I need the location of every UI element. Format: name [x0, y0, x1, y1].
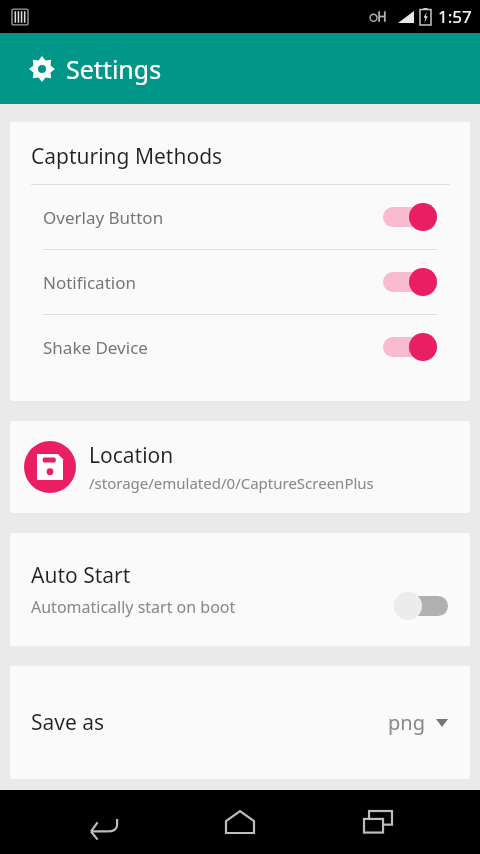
staticText: png — [388, 709, 425, 736]
button[interactable]: Overlay Button — [10, 185, 470, 249]
staticText: Auto Start — [31, 561, 131, 590]
button[interactable]: Off — [394, 592, 448, 620]
staticText: Notification — [43, 271, 383, 294]
staticText: Shake Device — [43, 336, 383, 359]
staticText: Capturing Methods — [31, 142, 223, 171]
button[interactable]: Save as — [10, 666, 470, 779]
staticText: 1:57 — [438, 5, 472, 28]
button[interactable]: On — [383, 268, 437, 296]
button[interactable]: Auto Start — [10, 533, 470, 646]
button[interactable]: Notification — [10, 250, 470, 314]
button[interactable]: On — [383, 203, 437, 231]
button[interactable]: Back — [68, 790, 138, 854]
staticText: Overlay Button — [43, 206, 383, 229]
staticText: Save as — [31, 708, 388, 737]
staticText: Settings — [66, 52, 162, 86]
staticText: /storage/emulated/0/CaptureScreenPlus — [89, 473, 374, 493]
button[interactable]: On — [383, 333, 437, 361]
button[interactable]: Recent apps — [343, 790, 413, 854]
button[interactable]: Shake Device — [10, 315, 470, 379]
staticText: Location — [89, 441, 174, 470]
staticText: Automatically start on boot — [31, 596, 236, 618]
button[interactable]: Location — [10, 421, 470, 513]
button[interactable]: Home — [205, 790, 275, 854]
